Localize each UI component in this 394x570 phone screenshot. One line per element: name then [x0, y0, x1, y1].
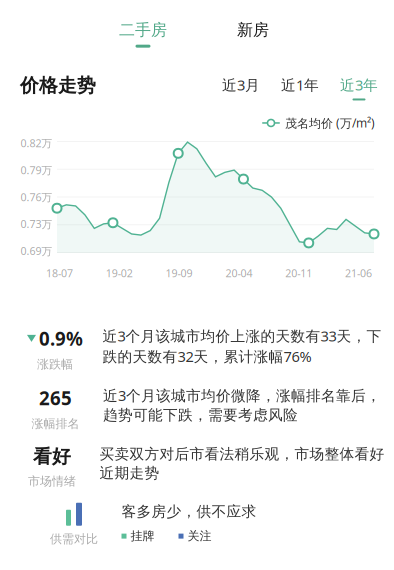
staticText: 265	[39, 385, 72, 410]
staticText: 21-06	[345, 266, 372, 280]
staticText: 价格走势	[20, 74, 96, 97]
staticText: 挂牌	[130, 529, 154, 543]
staticText: 客多房少，供不应求	[121, 503, 256, 521]
staticText: 近3个月该城市均价微降，涨幅排名靠后，	[103, 385, 381, 405]
button[interactable]: 近1年	[281, 75, 319, 100]
staticText: 近3月	[222, 75, 260, 94]
button[interactable]: 近3月	[222, 75, 260, 100]
staticText: 涨幅排名	[31, 416, 79, 431]
staticText: 近期走势	[99, 464, 159, 482]
staticText: 0.82万	[20, 136, 52, 150]
staticText: 关注	[187, 529, 211, 543]
staticText: 0.9%	[39, 326, 83, 351]
staticText: 新房	[237, 20, 269, 40]
staticText: 供需对比	[50, 532, 98, 546]
staticText: 茂名均价 (万/m²)	[285, 115, 375, 131]
staticText: 市场情绪	[28, 474, 76, 489]
staticText: 买卖双方对后市看法稍乐观，市场整体看好	[99, 445, 384, 463]
staticText: 0.79万	[20, 163, 52, 177]
button[interactable]: 近3年	[340, 75, 378, 100]
staticText: 近3个月该城市均价上涨的天数有33天，下	[102, 326, 381, 345]
button[interactable]: 新房	[228, 20, 278, 48]
staticText: 19-09	[166, 266, 193, 280]
staticText: 涨跌幅	[37, 357, 73, 371]
staticText: 18-07	[46, 266, 73, 280]
staticText: 20-04	[225, 266, 252, 280]
staticText: 近1年	[281, 75, 319, 94]
staticText: 二手房	[119, 20, 167, 40]
button[interactable]: 二手房	[108, 20, 178, 48]
staticText: 0.76万	[20, 190, 52, 204]
staticText: 20-11	[285, 266, 312, 280]
staticText: 0.69万	[20, 244, 52, 258]
staticText: 近3年	[340, 75, 378, 94]
staticText: 19-02	[106, 266, 133, 280]
staticText: 跌的天数有32天，累计涨幅76%	[102, 346, 311, 366]
staticText: 0.73万	[20, 217, 52, 231]
staticText: 趋势可能下跌，需要考虑风险	[103, 406, 298, 424]
staticText: 看好	[33, 445, 71, 468]
